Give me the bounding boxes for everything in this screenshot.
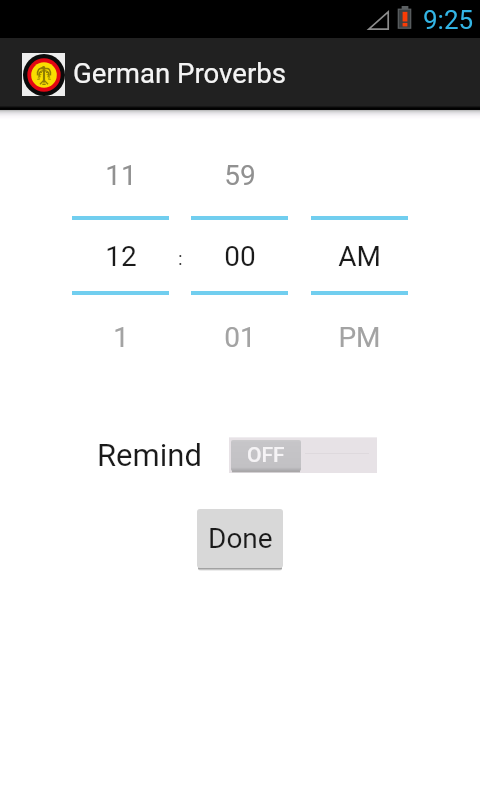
button[interactable]: Remind bbox=[97, 434, 202, 476]
staticText: OFF bbox=[247, 443, 285, 468]
staticText: Remind bbox=[97, 437, 202, 473]
other: App icon bbox=[22, 53, 65, 96]
button[interactable]: PM bbox=[311, 315, 408, 359]
staticText: Done bbox=[208, 522, 273, 555]
button[interactable]: App icon bbox=[0, 38, 300, 110]
button[interactable]: AM bbox=[311, 234, 408, 278]
staticText: 12 bbox=[105, 240, 137, 273]
staticText: AM bbox=[338, 240, 381, 273]
staticText: German Proverbs bbox=[73, 57, 287, 89]
button[interactable]: 01 bbox=[191, 315, 288, 359]
button[interactable]: 00 bbox=[191, 234, 288, 278]
button[interactable]: 12 bbox=[72, 234, 169, 278]
staticText: 01 bbox=[224, 321, 256, 354]
staticText: 00 bbox=[224, 240, 256, 273]
button[interactable]: 59 bbox=[191, 153, 288, 197]
button[interactable]: 11 bbox=[72, 153, 169, 197]
staticText: 11 bbox=[105, 159, 137, 192]
button[interactable]: OFF bbox=[229, 437, 377, 473]
staticText: 9:25 bbox=[423, 5, 474, 35]
staticText: : bbox=[178, 247, 183, 269]
button[interactable]: Done bbox=[197, 509, 283, 568]
button[interactable]: 1 bbox=[72, 315, 169, 359]
staticText: 59 bbox=[224, 159, 256, 192]
staticText: 1 bbox=[113, 321, 129, 354]
staticText: PM bbox=[338, 321, 381, 354]
